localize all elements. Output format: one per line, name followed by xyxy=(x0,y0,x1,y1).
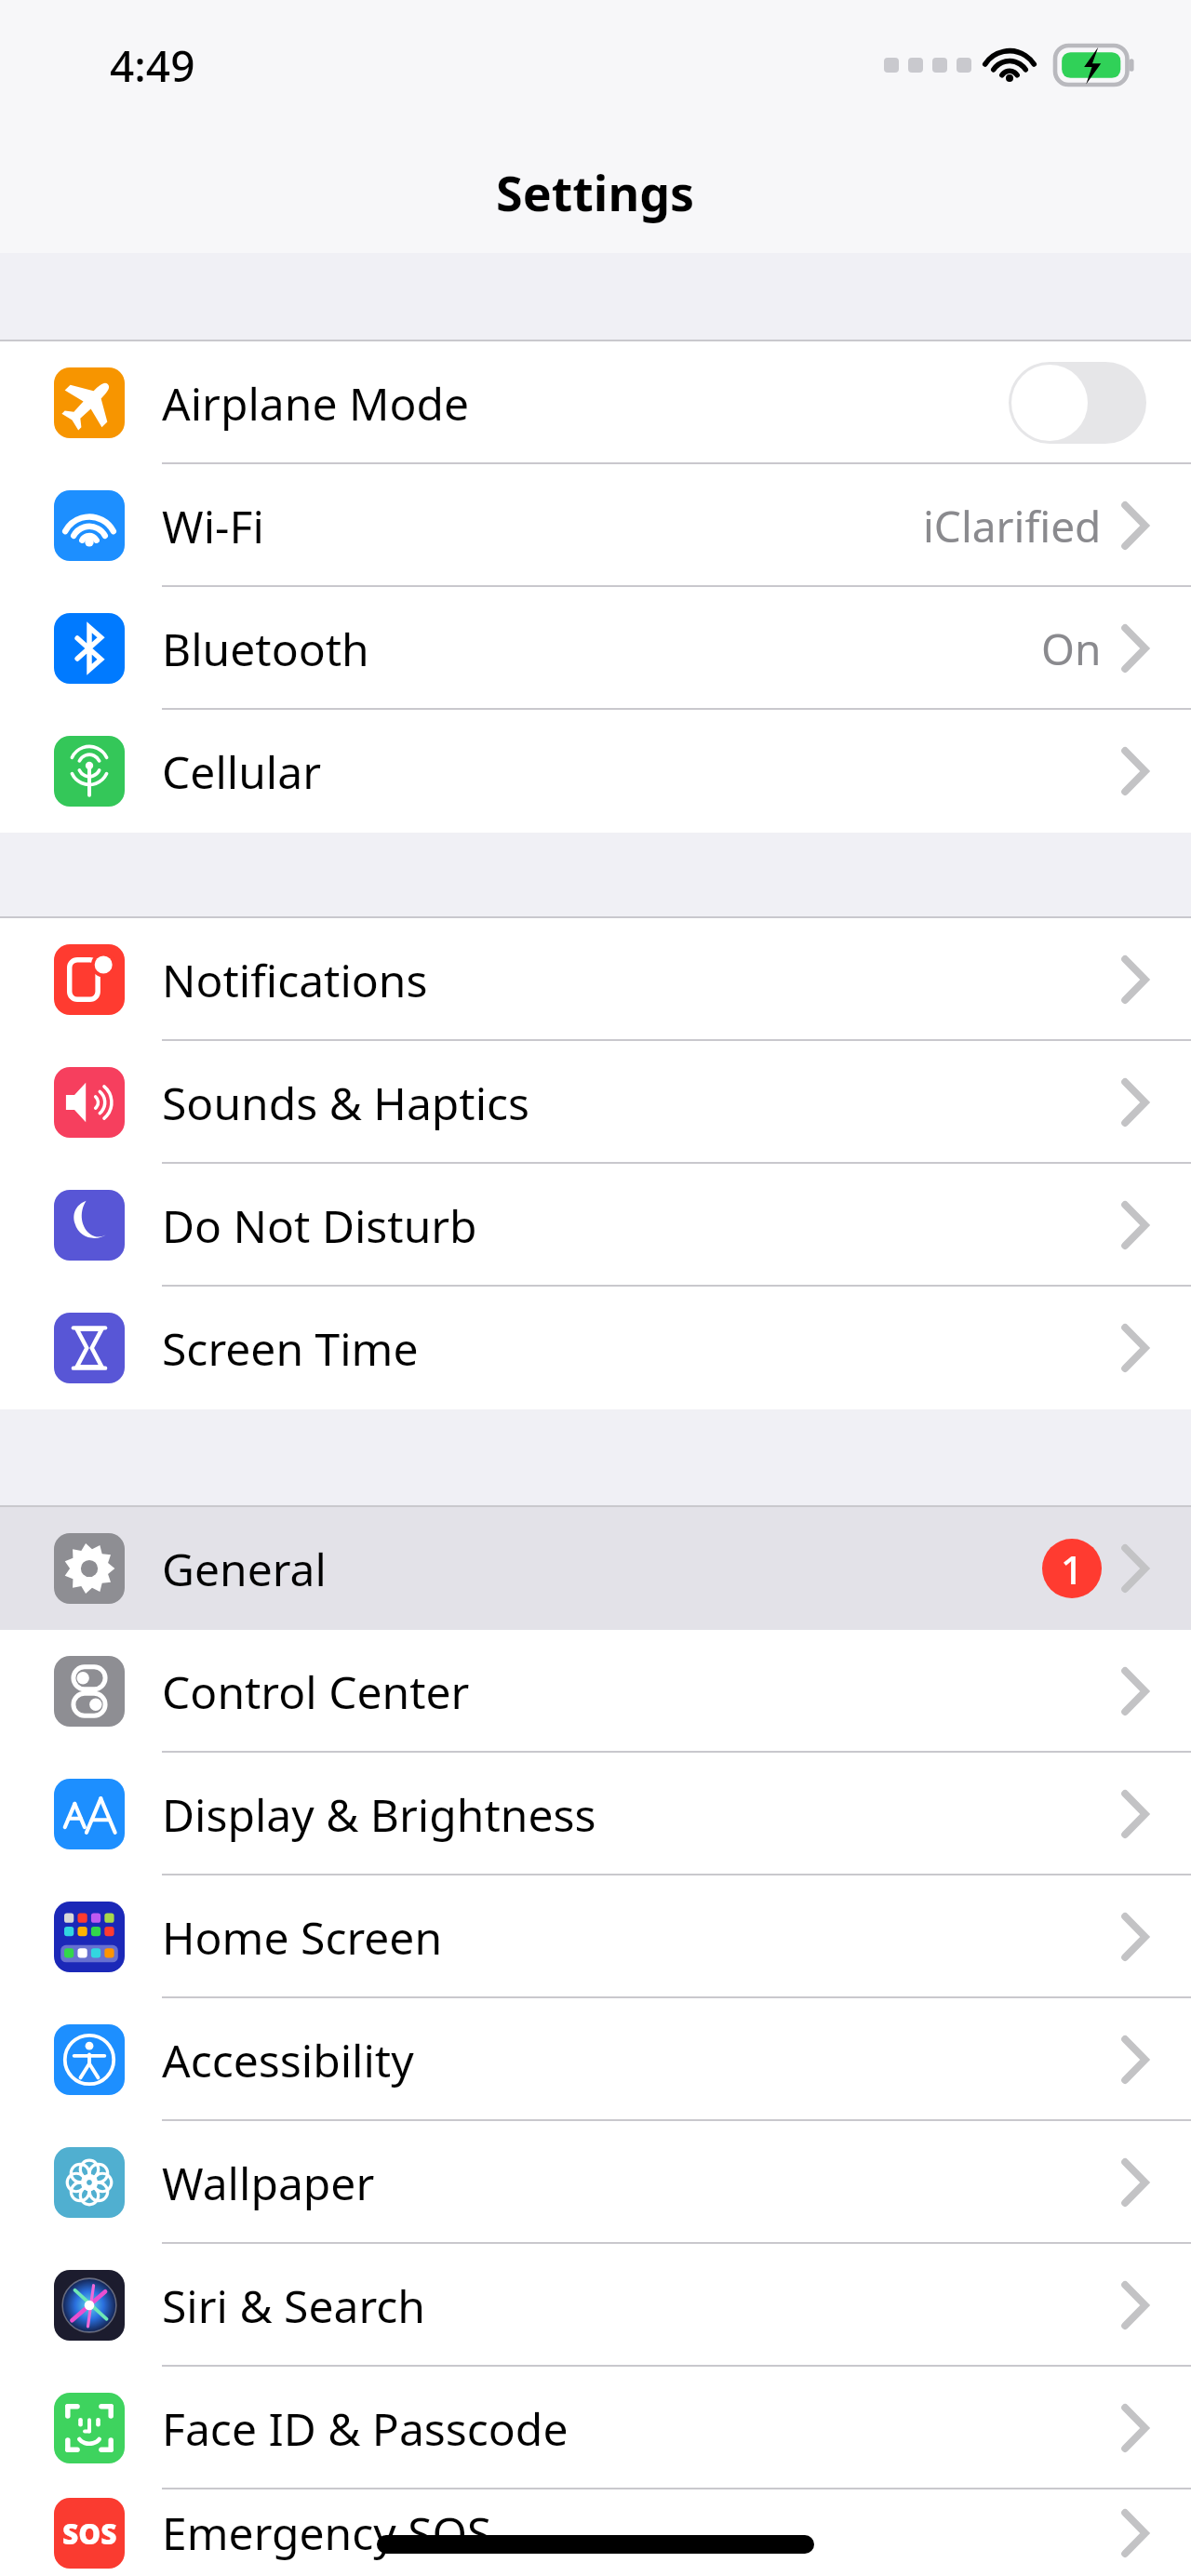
button[interactable]: Home Screen xyxy=(0,1875,1191,1998)
staticText: Sounds & Haptics xyxy=(162,1073,530,1133)
staticText: Display & Brightness xyxy=(162,1784,596,1845)
button[interactable]: Airplane Mode xyxy=(0,341,1191,464)
button[interactable]: Accessibility xyxy=(0,1998,1191,2121)
button[interactable]: Bluetooth xyxy=(0,587,1191,710)
button[interactable]: Airplane Mode toggle xyxy=(1009,362,1146,444)
button[interactable]: Notifications xyxy=(0,918,1191,1041)
staticText: Bluetooth xyxy=(162,619,369,679)
staticText: Home Screen xyxy=(162,1907,443,1968)
button[interactable]: Face ID & Passcode xyxy=(0,2367,1191,2489)
staticText: Do Not Disturb xyxy=(162,1195,477,1256)
staticText: iClarified xyxy=(923,497,1102,555)
staticText: Screen Time xyxy=(162,1318,419,1379)
button[interactable]: General xyxy=(0,1507,1191,1630)
staticText: General xyxy=(162,1539,327,1599)
staticText: Emergency SOS xyxy=(162,2503,492,2563)
button[interactable]: Do Not Disturb xyxy=(0,1164,1191,1287)
staticText: Airplane Mode xyxy=(162,373,470,434)
button[interactable]: Display & Brightness xyxy=(0,1753,1191,1875)
staticText: Cellular xyxy=(162,741,321,802)
button[interactable]: SOS xyxy=(0,2489,1191,2576)
staticText: SOS xyxy=(62,2515,117,2553)
staticText: Wi-Fi xyxy=(162,496,264,556)
staticText: Accessibility xyxy=(162,2030,414,2090)
staticText: Siri & Search xyxy=(162,2276,425,2336)
staticText: Control Center xyxy=(162,1662,470,1722)
button[interactable]: Wallpaper xyxy=(0,2121,1191,2244)
button[interactable]: Sounds & Haptics xyxy=(0,1041,1191,1164)
staticText: Notifications xyxy=(162,950,428,1010)
button[interactable]: Wi-Fi xyxy=(0,464,1191,587)
staticText: On xyxy=(1041,620,1102,678)
button[interactable]: Siri & Search xyxy=(0,2244,1191,2367)
button[interactable]: Screen Time xyxy=(0,1287,1191,1409)
staticText: 4:49 xyxy=(110,36,195,95)
staticText: Wallpaper xyxy=(162,2153,375,2213)
staticText: Settings xyxy=(496,159,695,225)
staticText: 1 xyxy=(1061,1542,1084,1595)
staticText: Face ID & Passcode xyxy=(162,2398,569,2459)
button[interactable]: Cellular xyxy=(0,710,1191,833)
button[interactable]: Control Center xyxy=(0,1630,1191,1753)
